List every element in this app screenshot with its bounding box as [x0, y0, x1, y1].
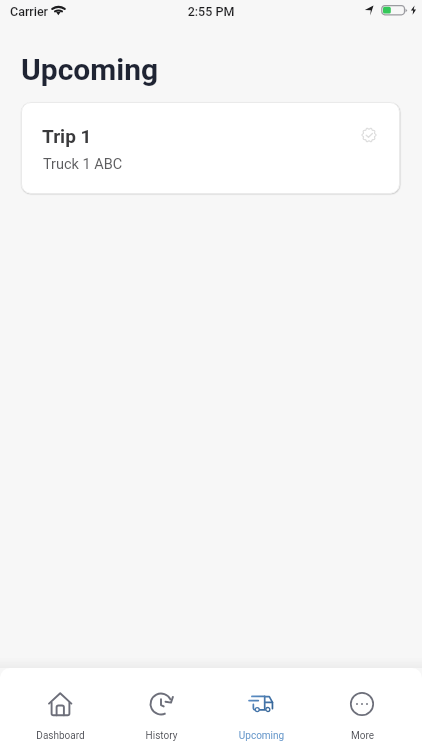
button[interactable]: History	[111, 668, 212, 750]
other: Dashboard	[46, 690, 74, 718]
staticText: History	[111, 730, 212, 742]
staticText: Upcoming	[21, 52, 159, 87]
button[interactable]: Dashboard	[10, 668, 111, 750]
other: Upcoming	[247, 690, 275, 718]
button[interactable]: More	[312, 668, 413, 750]
staticText: Dashboard	[10, 730, 111, 742]
other: History	[147, 690, 175, 718]
other: More	[348, 690, 376, 718]
button[interactable]: Trip 1	[21, 102, 400, 194]
staticText: 2:55 PM	[0, 4, 422, 19]
button[interactable]: Upcoming	[211, 668, 312, 750]
staticText: More	[312, 730, 413, 742]
staticText: Upcoming	[211, 730, 312, 742]
staticText: Trip 1	[42, 125, 92, 147]
staticText: Truck 1 ABC	[43, 156, 123, 173]
staticText: Carrier	[10, 4, 49, 19]
